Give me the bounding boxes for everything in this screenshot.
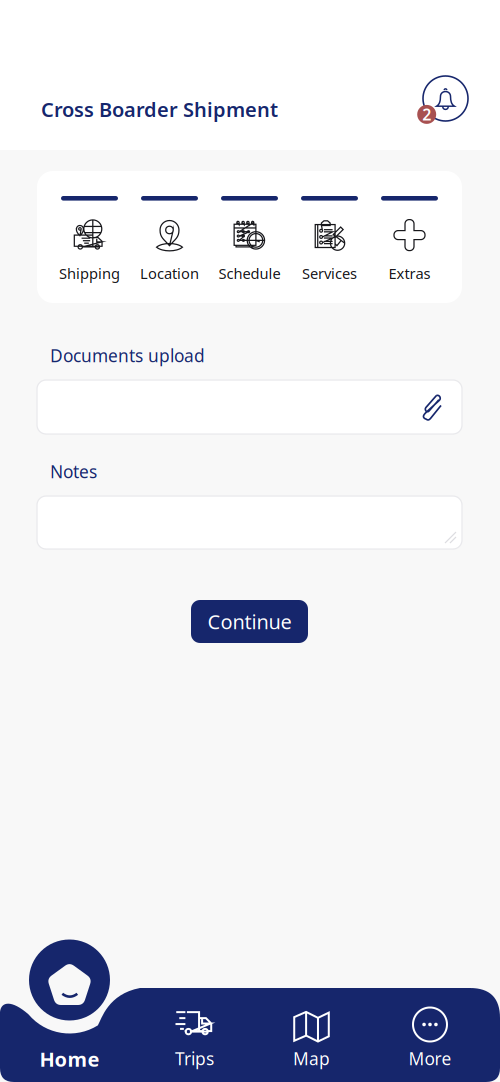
button[interactable]: Location	[129, 171, 209, 303]
staticText: Documents upload	[50, 344, 205, 367]
staticText: Notes	[50, 460, 97, 483]
button[interactable]: More	[375, 1000, 485, 1080]
button[interactable]	[37, 496, 462, 549]
staticText: Home	[39, 1046, 99, 1072]
staticText: Trips	[175, 1047, 214, 1070]
button[interactable]	[37, 380, 462, 434]
staticText: Cross Boarder Shipment	[41, 96, 278, 123]
button[interactable]: Home	[29, 939, 110, 1074]
staticText: More	[408, 1047, 451, 1070]
button[interactable]: Cross Boarder Shipment	[41, 96, 278, 123]
button[interactable]: Map	[256, 1000, 366, 1080]
button[interactable]: Extras	[369, 171, 449, 303]
button[interactable]: Notifications	[416, 76, 476, 132]
staticText: Extras	[388, 264, 430, 283]
staticText: Schedule	[218, 264, 280, 283]
button[interactable]: Schedule	[209, 171, 289, 303]
staticText: Map	[293, 1047, 330, 1070]
button[interactable]: Continue	[191, 600, 308, 643]
button[interactable]: Trips	[139, 1000, 249, 1080]
staticText: Location	[140, 264, 199, 283]
staticText: Services	[302, 264, 357, 283]
staticText: 2	[422, 104, 431, 125]
button[interactable]: Shipping	[49, 171, 129, 303]
staticText: Shipping	[59, 264, 120, 283]
button[interactable]: Services	[289, 171, 369, 303]
staticText: Continue	[207, 608, 291, 635]
